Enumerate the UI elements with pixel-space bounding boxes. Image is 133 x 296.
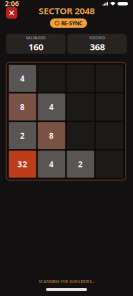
staticText: RECORD (89, 35, 105, 40)
staticText: 2 (78, 159, 83, 169)
staticText: SALVAGED (26, 35, 46, 40)
staticText: RE-SYNC (61, 20, 82, 27)
staticText: 160 (28, 40, 43, 53)
staticText: 8 (20, 102, 25, 112)
button[interactable]: Close (6, 7, 17, 19)
staticText: 2:06 (5, 0, 19, 8)
staticText: SECTOR 2048 (38, 4, 94, 17)
staticText: 32 (17, 159, 27, 169)
staticText: 2 (20, 130, 25, 141)
staticText: 8 (49, 130, 54, 141)
staticText: 4 (49, 159, 54, 169)
staticText: 4 (20, 73, 25, 84)
staticText: SCANNING FOR SURVIVORS... (38, 279, 94, 284)
staticText: 368 (90, 40, 105, 53)
staticText: 4 (49, 102, 54, 112)
button[interactable]: RE-SYNC (50, 18, 87, 28)
